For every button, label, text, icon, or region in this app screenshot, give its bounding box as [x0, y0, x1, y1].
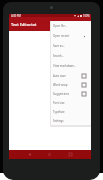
staticText: 4:00 PM: [11, 14, 21, 17]
button[interactable]: Recents: [60, 150, 81, 159]
staticText: Auto save: [53, 74, 66, 78]
button[interactable]: Save as...: [51, 41, 91, 51]
button[interactable]: Font size: [51, 98, 91, 107]
button[interactable]: Search...: [51, 51, 91, 61]
button[interactable]: Word wrap: [51, 80, 91, 89]
button[interactable]: Settings: [51, 116, 91, 125]
staticText: Open recent: [53, 34, 70, 38]
staticText: Suggestions: [53, 92, 70, 96]
staticText: Text Editor.txt: [11, 22, 37, 27]
staticText: Typeface: [53, 110, 65, 114]
staticText: 100%: [83, 14, 90, 17]
staticText: Font size: [53, 101, 65, 105]
staticText: Save as...: [53, 44, 65, 48]
button[interactable]: Open file...: [51, 21, 91, 31]
staticText: Open file...: [53, 24, 68, 28]
staticText: View markdown...: [53, 64, 77, 68]
button[interactable]: Back: [19, 150, 39, 159]
staticText: Settings: [53, 119, 64, 123]
button[interactable]: Suggestions: [51, 89, 91, 98]
button[interactable]: Open recent: [51, 31, 91, 41]
button[interactable]: Typeface: [51, 107, 91, 116]
button[interactable]: Auto save: [51, 71, 91, 80]
button[interactable]: View markdown...: [51, 61, 91, 71]
staticText: Word wrap: [53, 83, 68, 87]
staticText: Search...: [53, 54, 65, 58]
button[interactable]: Home: [39, 150, 60, 159]
